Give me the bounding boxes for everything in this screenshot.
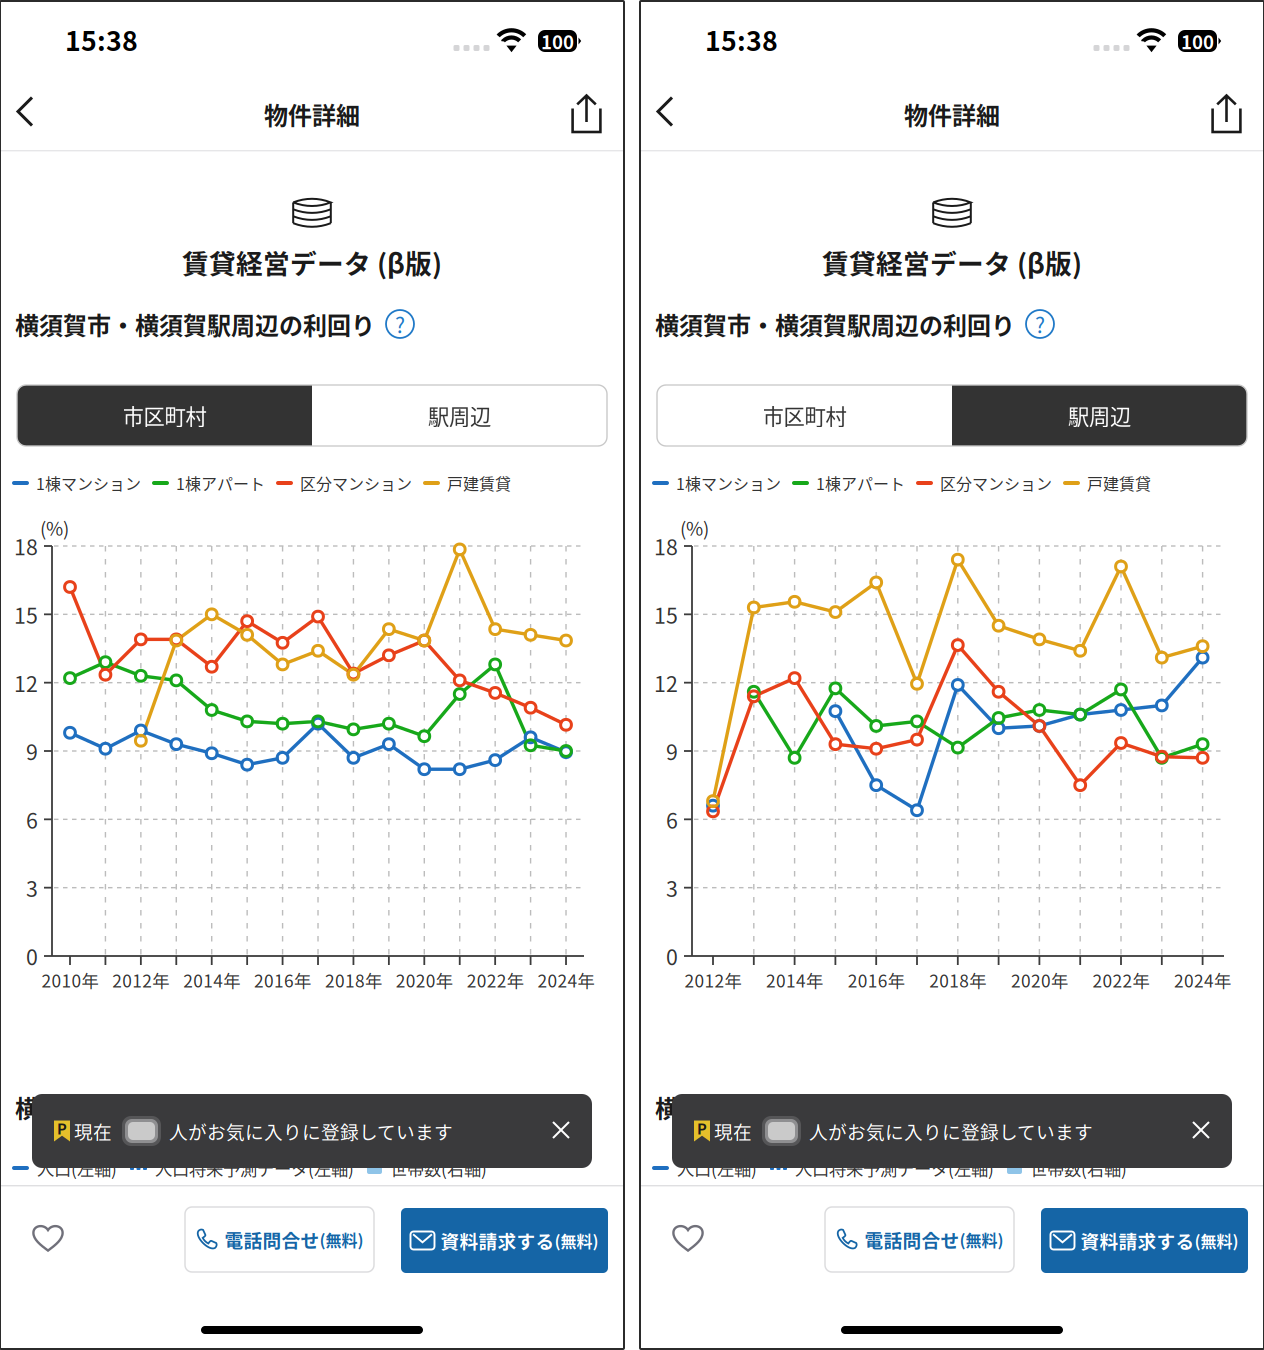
staticText: 100: [541, 27, 574, 54]
staticText: 現在: [714, 1117, 752, 1144]
staticText: 100: [1181, 27, 1214, 54]
staticText: 区分マンション: [940, 471, 1052, 495]
button[interactable]: 閉じる: [540, 1109, 583, 1152]
staticText: 戸建賃貸: [447, 471, 511, 495]
staticText: 3: [26, 872, 38, 903]
staticText: 12: [654, 667, 678, 698]
staticText: 人がお気に入りに登録しています: [169, 1117, 453, 1144]
staticText: 15:38: [705, 20, 778, 59]
staticText: (%): [40, 514, 69, 541]
staticText: 0: [666, 941, 678, 971]
button[interactable]: 駅周辺: [312, 385, 607, 446]
staticText: 3: [666, 872, 678, 903]
staticText: (無料): [319, 1228, 363, 1251]
staticText: 18: [14, 531, 38, 561]
staticText: 世帯数(右軸): [1030, 1155, 1127, 1181]
staticText: 戸建賃貸: [1087, 471, 1151, 495]
button[interactable]: 共有: [1200, 84, 1253, 143]
button[interactable]: 資料請求する: [401, 1208, 608, 1273]
staticText: (無料): [554, 1229, 598, 1252]
staticText: 人口将来予測データ(左軸): [795, 1155, 994, 1181]
staticText: 2014年: [766, 967, 823, 993]
staticText: 1棟アパート: [816, 471, 905, 495]
staticText: 電話問合せ: [224, 1226, 319, 1253]
staticText: 1棟マンション: [36, 471, 141, 495]
staticText: 2010年: [41, 967, 98, 993]
button[interactable]: 戻る: [2, 82, 48, 141]
staticText: 2020年: [396, 967, 453, 993]
staticText: 横須賀市・横須賀駅周辺の人口・世帯数: [655, 1090, 1087, 1124]
staticText: 賃貸経営データ (β版): [182, 243, 442, 281]
button[interactable]: お気に入り: [18, 1208, 78, 1266]
staticText: 横須賀市・横須賀駅周辺の人口・世帯数: [15, 1090, 447, 1124]
staticText: 1棟マンション: [676, 471, 781, 495]
staticText: 2024年: [1174, 967, 1231, 993]
staticText: 電話問合せ: [864, 1226, 959, 1253]
staticText: 1棟アパート: [176, 471, 265, 495]
button[interactable]: 駅周辺: [952, 385, 1247, 446]
staticText: P: [57, 1117, 67, 1139]
staticText: 2014年: [183, 967, 240, 993]
staticText: 人口(左軸): [677, 1155, 757, 1181]
button[interactable]: 電話問合せ: [185, 1207, 374, 1272]
staticText: 6: [26, 804, 38, 835]
staticText: 2022年: [467, 967, 524, 993]
staticText: 物件詳細: [904, 97, 1000, 131]
button[interactable]: 市区町村: [657, 385, 952, 446]
staticText: 2016年: [848, 967, 905, 993]
button[interactable]: 資料請求する: [1041, 1208, 1248, 1273]
staticText: 2018年: [325, 967, 382, 993]
staticText: 15:38: [65, 20, 138, 59]
staticText: 2022年: [1092, 967, 1149, 993]
staticText: 人口(左軸): [37, 1155, 117, 1181]
button[interactable]: お気に入り: [658, 1208, 718, 1266]
staticText: 0: [26, 941, 38, 971]
staticText: 現在: [74, 1117, 112, 1144]
staticText: P: [697, 1117, 707, 1139]
staticText: 市区町村: [762, 400, 846, 431]
staticText: 2024年: [537, 967, 594, 993]
staticText: 資料請求する: [1080, 1227, 1194, 1254]
staticText: 横須賀市・横須賀駅周辺の利回り: [15, 307, 375, 341]
staticText: 2016年: [254, 967, 311, 993]
staticText: 12: [14, 667, 38, 698]
staticText: 人がお気に入りに登録しています: [809, 1117, 1093, 1144]
staticText: 15: [654, 599, 678, 630]
staticText: 賃貸経営データ (β版): [822, 243, 1082, 281]
staticText: (%): [680, 514, 709, 541]
staticText: 資料請求する: [440, 1227, 554, 1254]
staticText: 15: [14, 599, 38, 630]
staticText: ?: [395, 309, 405, 339]
staticText: 18: [654, 531, 678, 561]
staticText: 区分マンション: [300, 471, 412, 495]
staticText: 横須賀市・横須賀駅周辺の利回り: [655, 307, 1015, 341]
staticText: 9: [26, 736, 38, 766]
staticText: 2018年: [929, 967, 986, 993]
staticText: 駅周辺: [1068, 400, 1131, 431]
staticText: 世帯数(右軸): [390, 1155, 487, 1181]
staticText: 9: [666, 736, 678, 766]
staticText: 2012年: [112, 967, 169, 993]
button[interactable]: 戻る: [642, 82, 688, 141]
button[interactable]: 共有: [560, 84, 613, 143]
staticText: 6: [666, 804, 678, 835]
staticText: 人口将来予測データ(左軸): [155, 1155, 354, 1181]
staticText: 市区町村: [122, 400, 206, 431]
button[interactable]: 閉じる: [1180, 1109, 1223, 1152]
staticText: (無料): [1194, 1229, 1238, 1252]
staticText: (無料): [959, 1228, 1003, 1251]
staticText: 2020年: [1011, 967, 1068, 993]
staticText: 駅周辺: [428, 400, 491, 431]
button[interactable]: 電話問合せ: [825, 1207, 1014, 1272]
staticText: 2012年: [684, 967, 741, 993]
button[interactable]: 市区町村: [17, 385, 312, 446]
staticText: 物件詳細: [264, 97, 360, 131]
staticText: ?: [1035, 309, 1045, 339]
